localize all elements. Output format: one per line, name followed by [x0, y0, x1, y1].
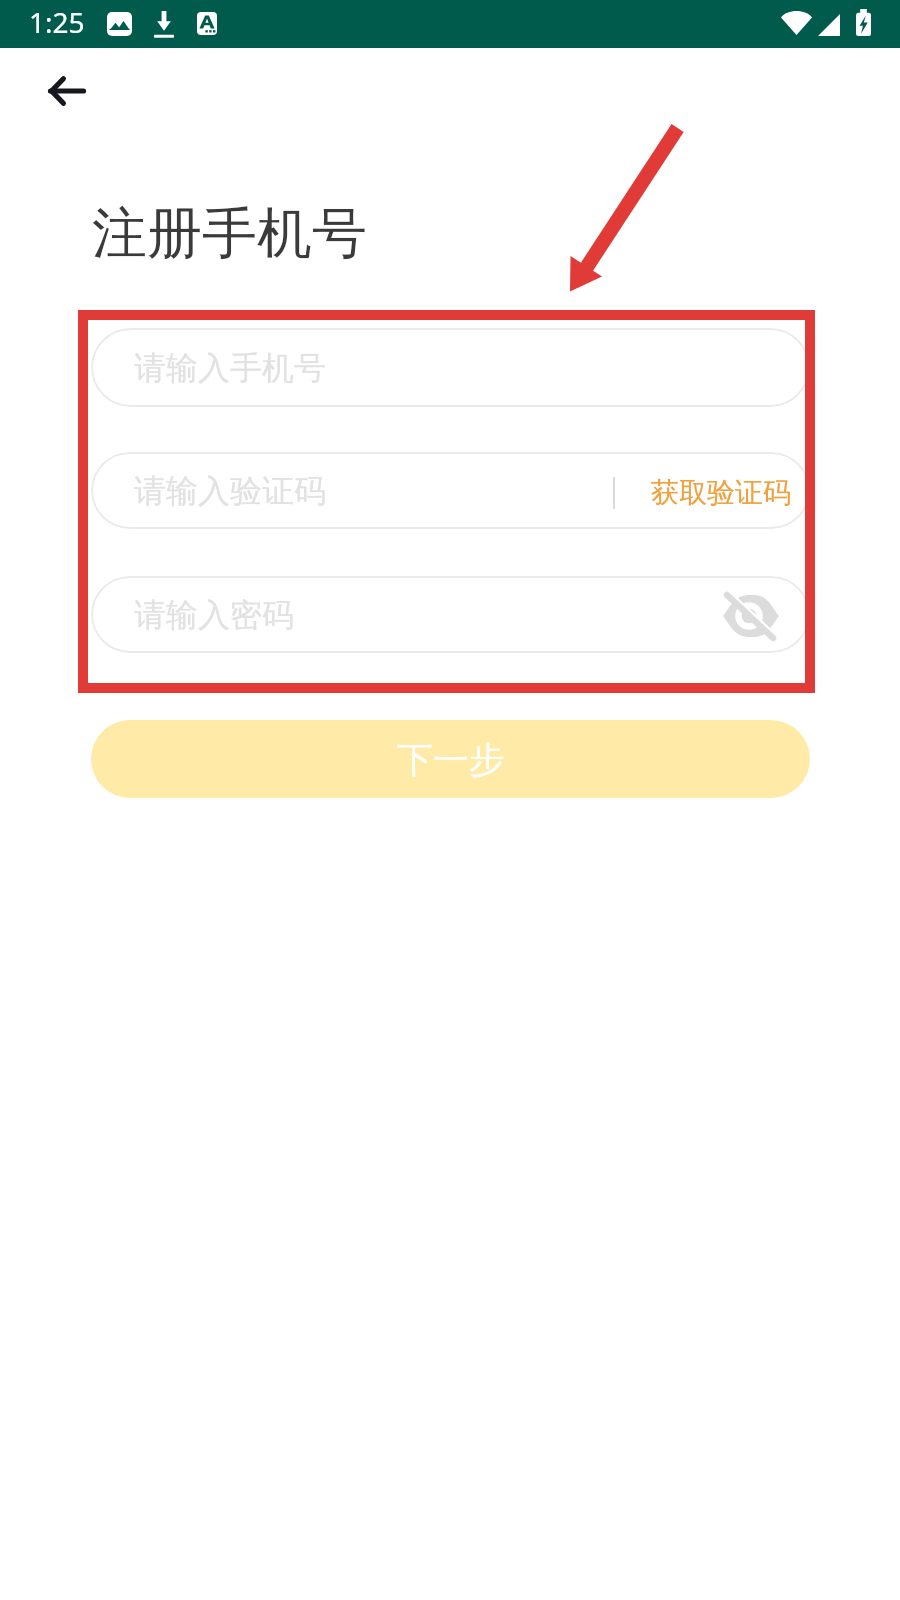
button[interactable]: 请输入手机号	[91, 328, 810, 407]
staticText: 获取验证码	[651, 475, 791, 510]
button[interactable]: Back	[25, 66, 109, 115]
staticText: 请输入密码	[134, 595, 294, 635]
button[interactable]: 获取验证码	[610, 474, 810, 509]
staticText: 1:25	[29, 3, 85, 41]
button[interactable]: 请输入验证码	[91, 452, 810, 529]
staticText: 请输入验证码	[134, 471, 326, 511]
staticText: 注册手机号	[92, 199, 367, 268]
button[interactable]: 下一步	[91, 720, 810, 798]
button[interactable]: 请输入密码	[91, 576, 810, 653]
button[interactable]: Show password	[720, 587, 784, 643]
staticText: 请输入手机号	[134, 348, 326, 388]
staticText: 下一步	[397, 737, 505, 782]
